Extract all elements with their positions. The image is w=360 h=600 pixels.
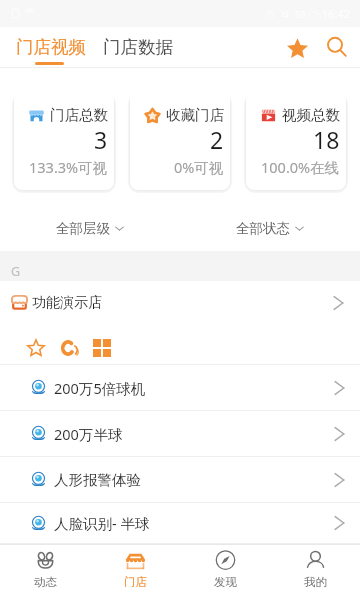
button[interactable]: 人形报警体验 [0,457,360,502]
staticText: 200万半球 [54,424,123,444]
staticText: 133.3%可视 [29,157,108,177]
staticText: 门店数据 [103,36,173,58]
button[interactable]: 视频总数 [246,91,346,190]
staticText: 人脸识别- 半球 [54,513,150,533]
button[interactable]: 动态 [0,545,90,600]
staticText: 3 [94,124,108,155]
button[interactable]: 200万半球 [0,411,360,456]
button[interactable]: 我的 [270,545,360,600]
button[interactable]: 200万5倍球机 [0,365,360,410]
staticText: 人形报警体验 [54,471,141,489]
staticText: 全部状态 [236,220,290,237]
staticText: 200万5倍球机 [54,378,146,398]
button[interactable]: 收藏门店 [130,91,230,190]
button[interactable]: 功能演示店 [0,281,360,324]
staticText: 18 [313,124,340,155]
button[interactable]: 门店总数 [14,91,114,190]
staticText: 全部层级 [56,220,110,237]
button[interactable]: Favorites [273,27,313,67]
button[interactable]: 发现 [180,545,270,600]
staticText: 功能演示店 [32,294,102,312]
staticText: 动态 [34,575,57,589]
button[interactable]: Call [57,335,83,361]
staticText: 门店视频 [16,36,86,58]
staticText: 发现 [214,575,237,589]
button[interactable]: 人脸识别- 半球 [0,503,360,543]
staticText: 视频总数 [282,106,340,124]
button[interactable]: Apps [89,335,115,361]
staticText: 2 [210,124,224,155]
button[interactable]: 门店视频 [16,27,86,67]
staticText: 门店 [124,575,147,589]
button[interactable]: 全部层级 [0,193,180,251]
button[interactable]: Favorite [23,335,49,361]
staticText: 门店总数 [50,106,108,124]
staticText: 100.0%在线 [261,157,340,177]
staticText: 我的 [304,575,327,589]
button[interactable] [16,27,360,67]
staticText: G [11,263,21,280]
button[interactable]: 门店数据 [103,27,173,67]
staticText: 收藏门店 [166,106,224,124]
button[interactable]: 门店 [90,545,180,600]
button[interactable]: Search [317,27,357,67]
button[interactable]: 全部状态 [180,193,360,251]
staticText: 0%可视 [174,157,224,177]
